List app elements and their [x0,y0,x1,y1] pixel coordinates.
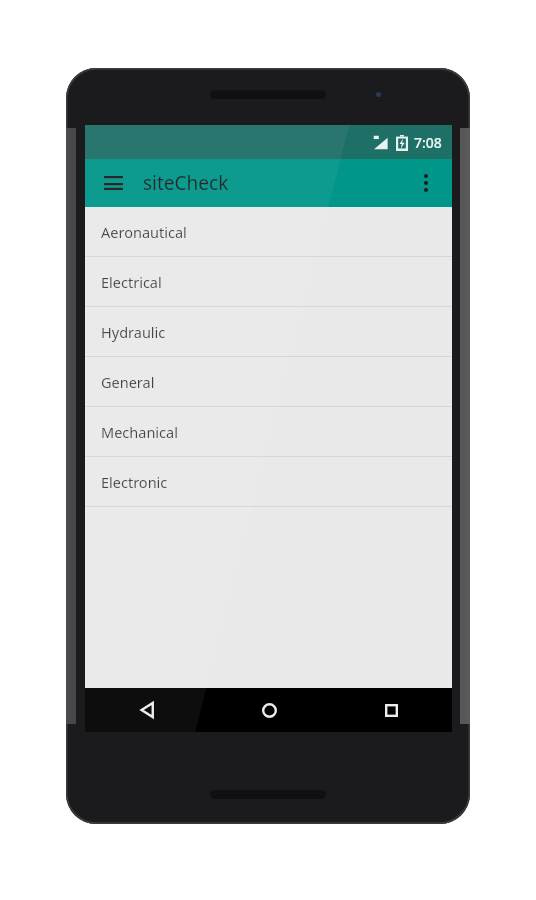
staticText: 7:08 [414,133,442,152]
staticText: siteCheck [143,170,229,196]
staticText: Hydraulic [101,322,166,342]
button[interactable]: General [85,357,452,407]
button[interactable]: Hydraulic [85,307,452,357]
button[interactable]: Aeronautical [85,207,452,257]
button[interactable]: Recent apps [330,688,452,732]
button[interactable]: Home [208,688,330,732]
staticText: Mechanical [101,422,178,442]
button[interactable]: Mechanical [85,407,452,457]
button[interactable]: Electronic [85,457,452,507]
staticText: General [101,372,155,392]
staticText: Aeronautical [101,222,187,242]
staticText: Electronic [101,472,168,492]
button[interactable]: Open navigation drawer [93,163,133,203]
button[interactable]: Electrical [85,257,452,307]
button[interactable]: More options [406,163,446,203]
staticText: Electrical [101,272,162,292]
button[interactable]: Back [85,688,208,732]
